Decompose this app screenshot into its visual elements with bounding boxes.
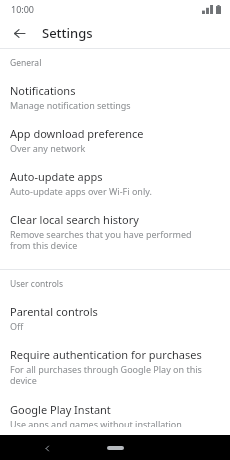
staticText: Clear local search history bbox=[10, 212, 139, 227]
staticText: Parental controls bbox=[10, 304, 98, 319]
button[interactable]: Notifications bbox=[0, 76, 230, 119]
button[interactable]: Back bbox=[6, 20, 32, 46]
button[interactable]: Home bbox=[107, 446, 124, 450]
staticText: Google Play Instant bbox=[10, 402, 111, 417]
staticText: For all purchases through Google Play on… bbox=[10, 363, 214, 387]
staticText: 10:00 bbox=[11, 3, 35, 15]
button[interactable]: App download preference bbox=[0, 119, 230, 162]
staticText: Auto-update apps bbox=[10, 169, 103, 184]
button[interactable]: Require authentication for purchases bbox=[0, 340, 230, 395]
staticText: User controls bbox=[10, 278, 64, 290]
staticText: Manage notification settings bbox=[10, 99, 131, 111]
staticText: Off bbox=[10, 320, 24, 332]
staticText: Auto-update apps over Wi-Fi only. bbox=[10, 185, 152, 197]
button[interactable]: Parental controls bbox=[0, 297, 230, 340]
staticText: App download preference bbox=[10, 126, 144, 141]
staticText: Settings bbox=[42, 24, 93, 42]
staticText: Notifications bbox=[10, 83, 76, 98]
button[interactable]: Back bbox=[38, 439, 56, 457]
staticText: Require authentication for purchases bbox=[10, 347, 202, 362]
staticText: Remove searches that you have performed … bbox=[10, 228, 214, 252]
button[interactable]: Clear local search history bbox=[0, 205, 230, 260]
button[interactable]: Google Play Instant bbox=[0, 395, 230, 435]
button[interactable]: Auto-update apps bbox=[0, 162, 230, 205]
staticText: Over any network bbox=[10, 142, 86, 154]
staticText: General bbox=[10, 57, 42, 69]
staticText: Use apps and games without installation bbox=[10, 418, 182, 427]
